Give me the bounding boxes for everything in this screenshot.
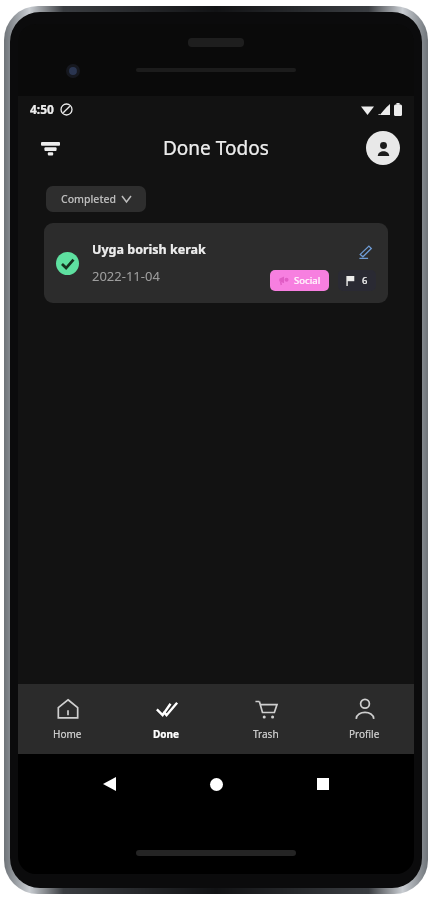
button[interactable]: Edit (354, 241, 376, 263)
button[interactable]: Uyga borish kerak (44, 223, 388, 303)
button[interactable]: Trash (216, 684, 315, 754)
staticText: 4:50 (30, 101, 54, 117)
button[interactable]: Recents (307, 768, 339, 800)
staticText: Completed (61, 192, 116, 206)
button[interactable]: Profile (366, 131, 400, 165)
button[interactable]: Completed (46, 186, 146, 212)
staticText: Social (294, 274, 321, 287)
staticText: Home (53, 727, 82, 741)
staticText: Profile (349, 727, 380, 741)
button[interactable]: 6 (338, 270, 376, 291)
staticText: 6 (362, 274, 368, 287)
button[interactable]: Filter (32, 130, 68, 166)
staticText: 2022-11-04 (92, 267, 160, 285)
staticText: Done Todos (163, 135, 269, 161)
button[interactable]: Profile (315, 684, 414, 754)
staticText: Done (153, 727, 180, 741)
button[interactable]: Home (200, 768, 232, 800)
button[interactable]: Social (270, 270, 329, 291)
button[interactable]: Home (18, 684, 117, 754)
staticText: Trash (253, 727, 279, 741)
button[interactable]: Back (93, 768, 125, 800)
staticText: Uyga borish kerak (92, 241, 206, 258)
button[interactable]: Done (117, 684, 216, 754)
